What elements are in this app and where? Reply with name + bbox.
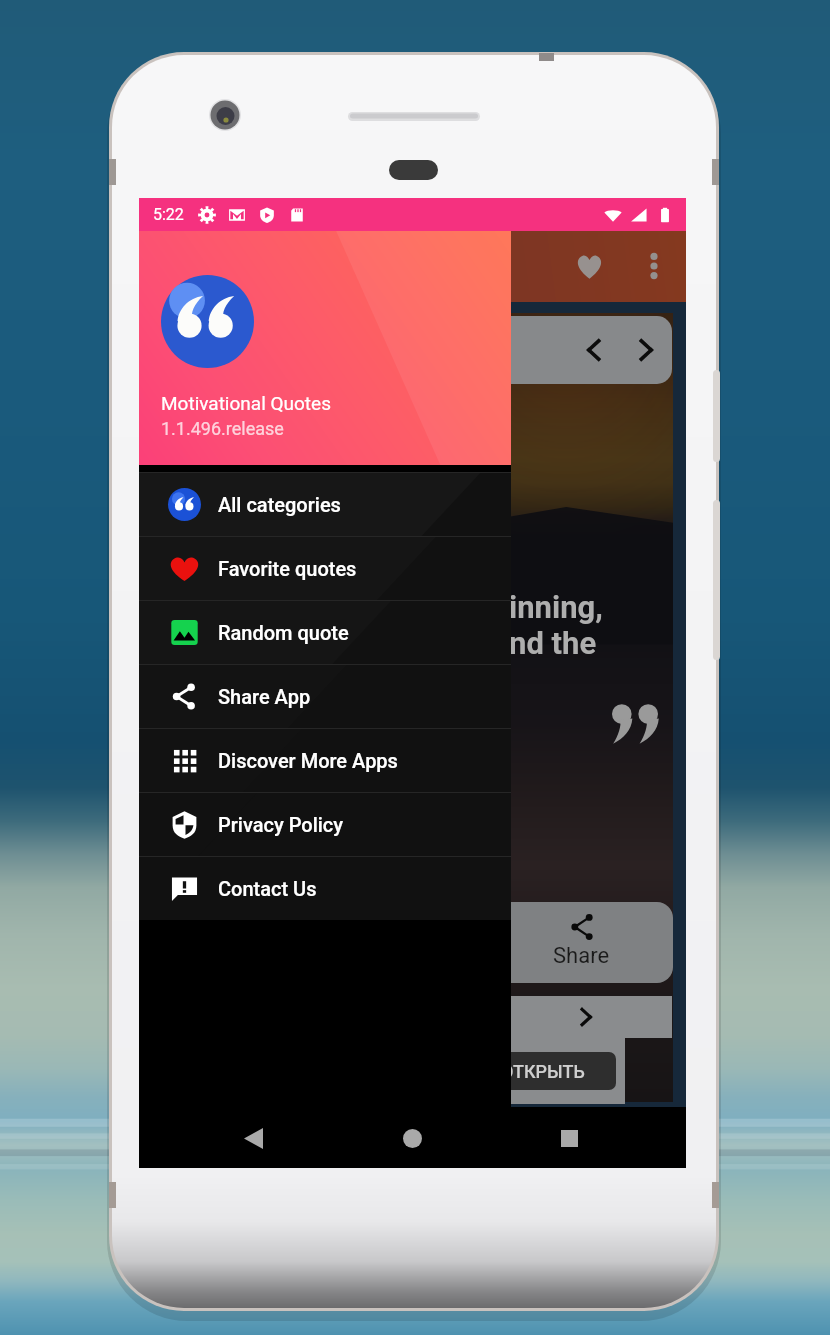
button[interactable]: Random quote (139, 600, 511, 664)
staticText: Random quote (218, 621, 349, 644)
button[interactable]: Next quote (624, 328, 668, 372)
staticText: Contact Us (218, 877, 317, 900)
button[interactable]: ОТКРЫТЬ (469, 1052, 616, 1090)
button[interactable]: Back (229, 1114, 277, 1162)
staticText: inning, (509, 589, 603, 625)
staticText: Share (553, 943, 610, 969)
button[interactable]: Share (139, 902, 673, 983)
button[interactable]: Discover More Apps (139, 728, 511, 792)
button[interactable]: All categories (139, 472, 511, 536)
button[interactable]: Home (388, 1114, 436, 1162)
staticText: ОТКРЫТЬ (501, 1061, 585, 1082)
button[interactable]: More options (632, 244, 676, 288)
button[interactable]: Favorite quotes (139, 536, 511, 600)
staticText: All categories (218, 493, 341, 516)
button[interactable]: Favorite (565, 242, 613, 290)
staticText: nd the (509, 625, 597, 661)
button[interactable]: Contact Us (139, 856, 511, 920)
staticText: Favorite quotes (218, 557, 357, 580)
button[interactable]: Recent apps (545, 1114, 593, 1162)
staticText: Share App (218, 685, 311, 708)
staticText: Discover More Apps (218, 749, 398, 772)
button[interactable]: Share App (139, 664, 511, 728)
button[interactable]: Previous quote (572, 328, 616, 372)
staticText: 1.1.496.release (161, 418, 284, 439)
staticText: 5:22 (153, 205, 184, 224)
staticText: Motivational Quotes (161, 392, 331, 414)
button[interactable]: Privacy Policy (139, 792, 511, 856)
button[interactable]: Next (139, 996, 672, 1038)
staticText: Privacy Policy (218, 813, 344, 836)
